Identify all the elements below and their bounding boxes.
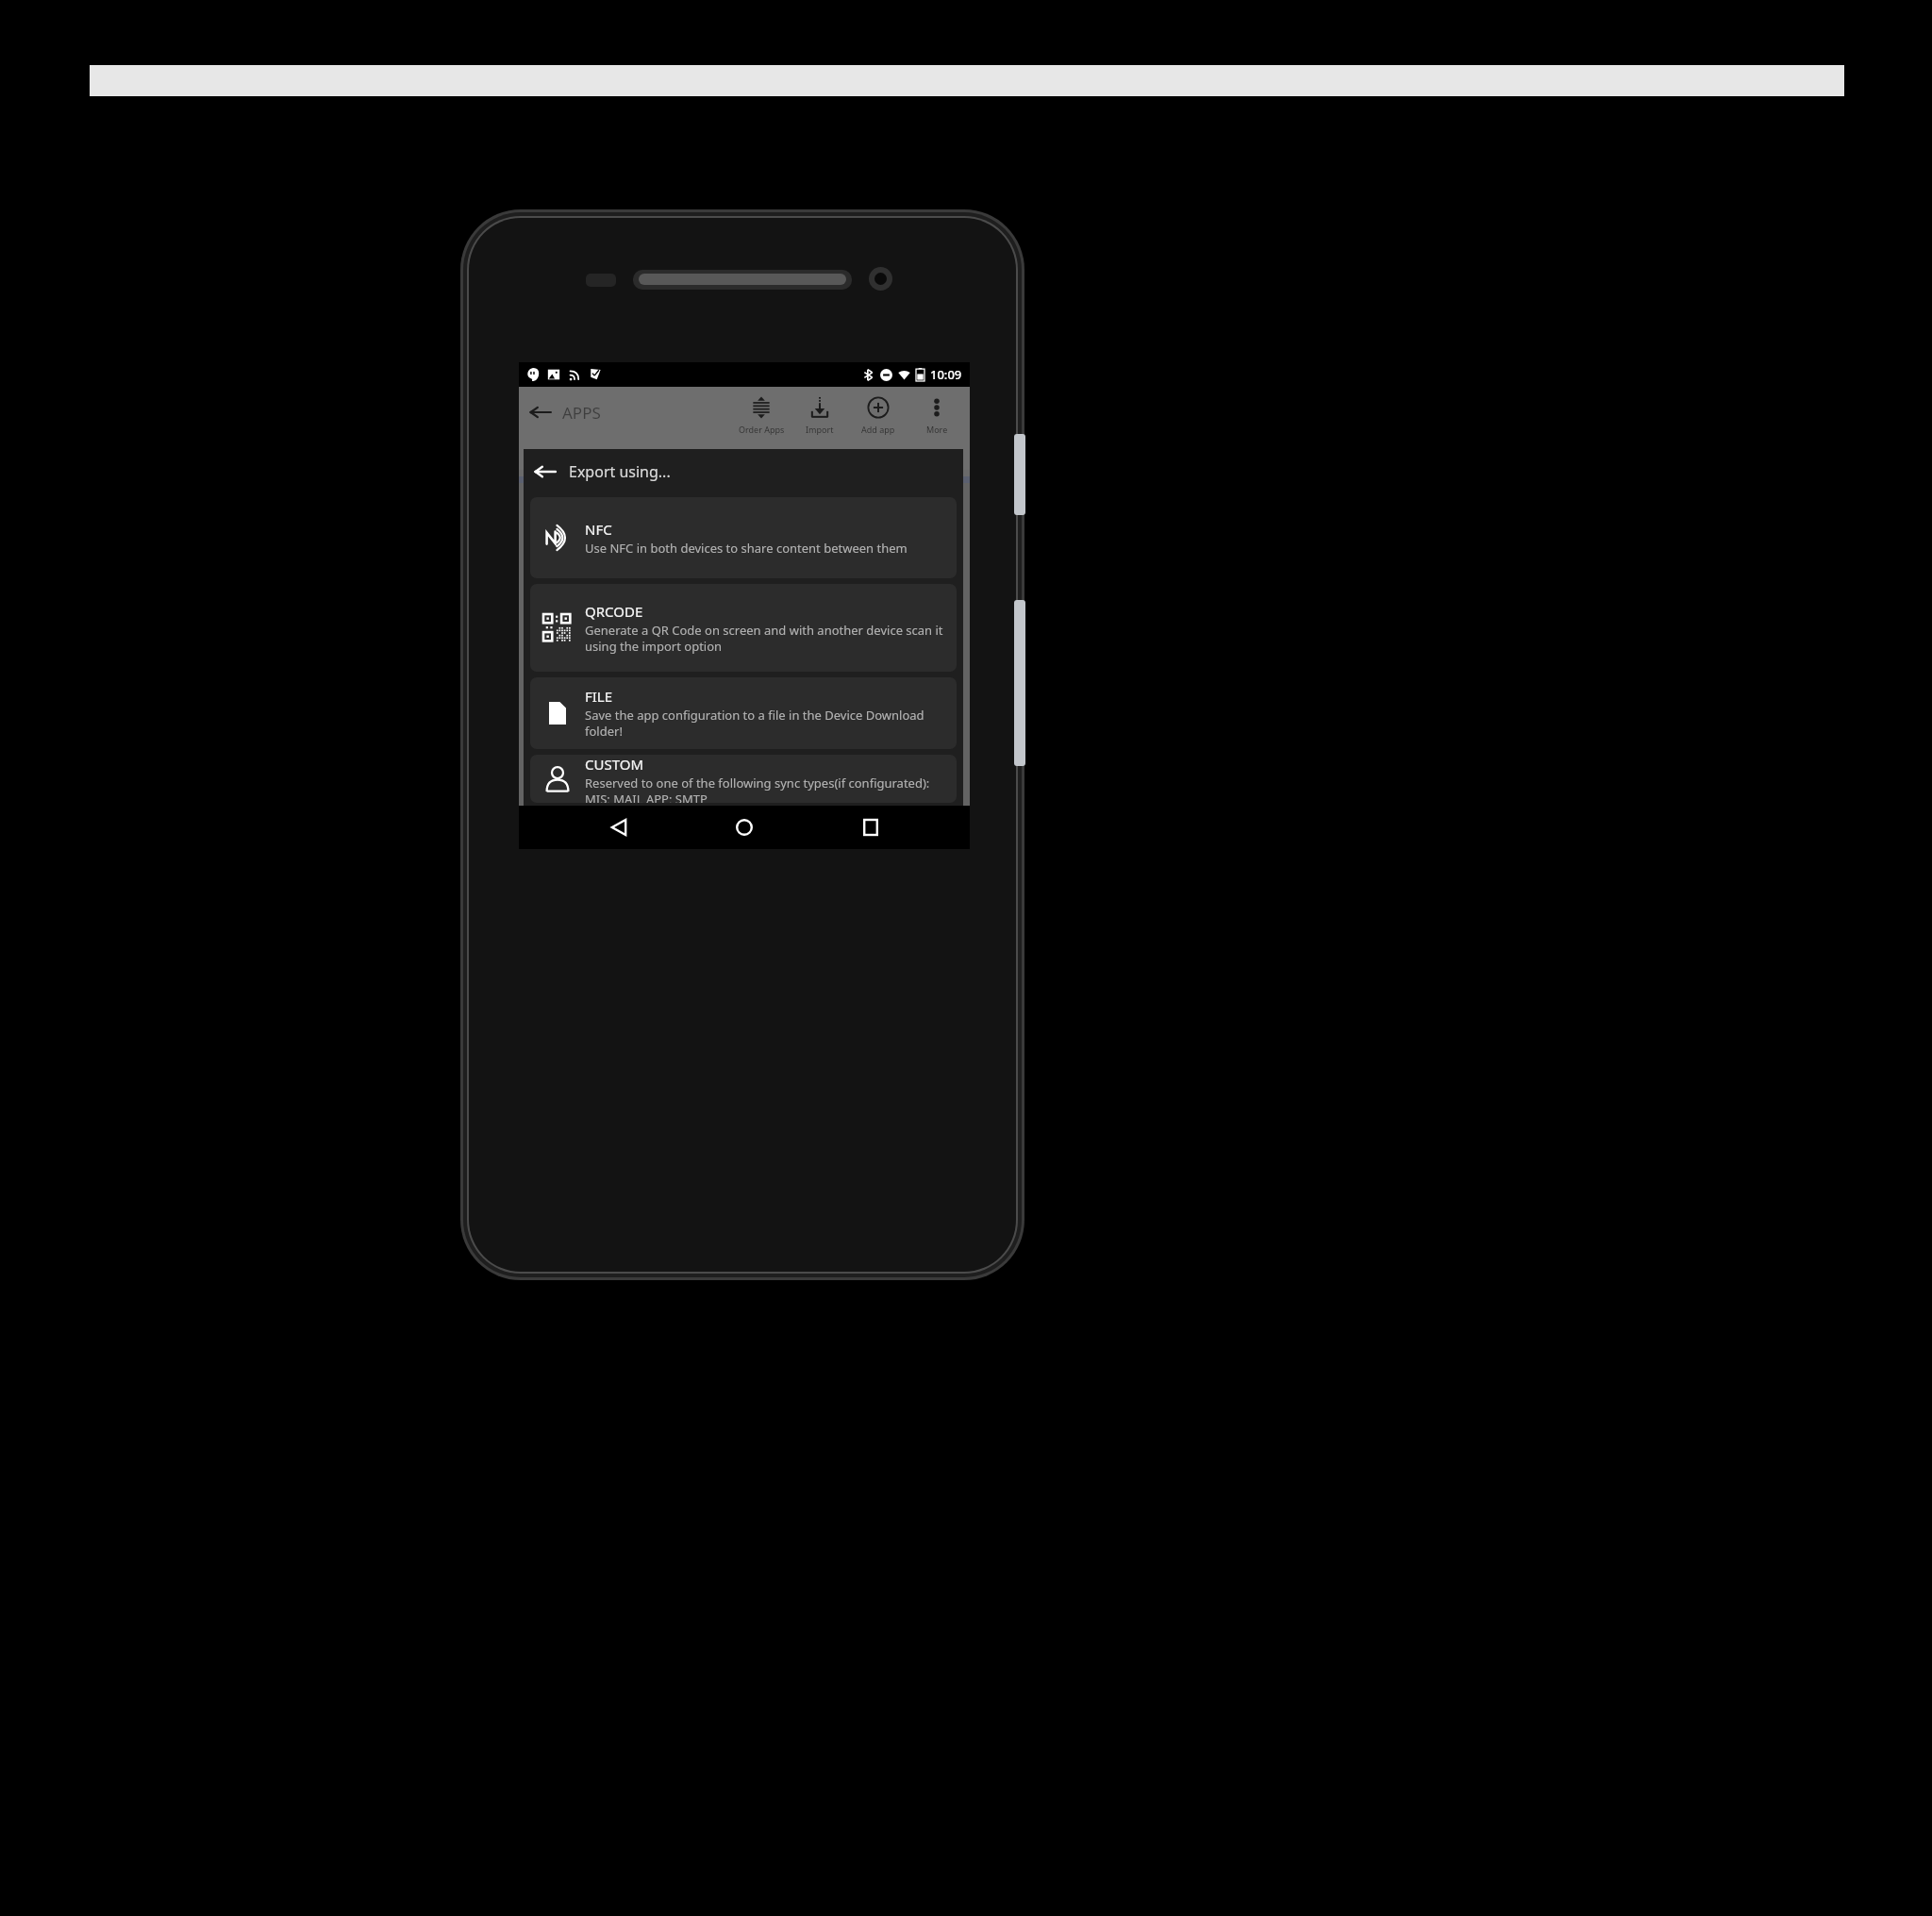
button[interactable]: Import [791, 394, 849, 437]
button[interactable]: Recents [844, 806, 897, 849]
button[interactable]: Back [528, 400, 601, 425]
staticText: Save the app configuration to a file in … [585, 707, 947, 740]
staticText: Import [806, 424, 834, 435]
staticText: APPS [562, 402, 601, 424]
staticText: QRCODE [585, 602, 643, 621]
staticText: Use NFC in both devices to share content… [585, 540, 908, 557]
button[interactable]: Back [524, 449, 963, 494]
button[interactable]: Order Apps [732, 394, 791, 437]
staticText: Export using... [569, 461, 671, 482]
button[interactable]: CUSTOM [530, 755, 957, 803]
button[interactable]: FILE [530, 677, 957, 749]
staticText: CUSTOM [585, 755, 644, 774]
button[interactable]: NFC [530, 497, 957, 578]
staticText: 10:09 [930, 366, 962, 383]
staticText: FILE [585, 687, 613, 706]
button[interactable]: Add app [849, 394, 908, 437]
staticText: NFC [585, 520, 612, 539]
button[interactable]: More [908, 394, 966, 437]
staticText: Order Apps [739, 424, 785, 435]
button[interactable]: Home [718, 806, 771, 849]
staticText: Add app [861, 424, 895, 435]
staticText: Reserved to one of the following sync ty… [585, 775, 947, 803]
button[interactable]: Back [592, 806, 645, 849]
staticText: Generate a QR Code on screen and with an… [585, 622, 947, 655]
button[interactable]: QRCODE [530, 584, 957, 672]
staticText: More [926, 424, 948, 435]
other: Back [533, 459, 558, 484]
other: Back [528, 400, 553, 425]
